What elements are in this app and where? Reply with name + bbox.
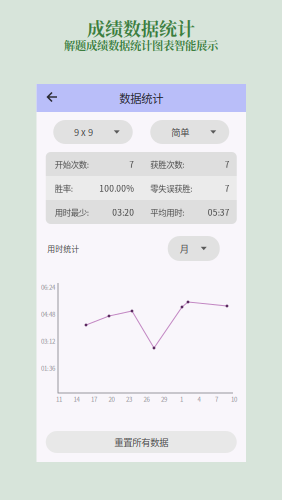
staticText: 简单 [171, 125, 189, 139]
staticText: 用时统计 [47, 243, 79, 254]
staticText: 26 [143, 395, 149, 403]
button[interactable]: 月 [168, 236, 220, 261]
staticText: 14 [73, 395, 79, 403]
staticText: 重置所有数据 [114, 435, 168, 449]
staticText: 7 [215, 395, 218, 403]
staticText: 解题成绩数据统计图表智能展示 [64, 37, 218, 53]
staticText: 23 [126, 395, 132, 403]
staticText: 04:48 [41, 310, 55, 318]
staticText: 零失误获胜: [150, 182, 192, 194]
button[interactable]: 9 x 9 [53, 120, 133, 144]
button[interactable]: Back [36, 86, 65, 110]
staticText: 03:12 [41, 337, 55, 345]
staticText: 平均用时: [150, 206, 184, 218]
staticText: 10 [231, 395, 237, 403]
staticText: 100.00% [99, 182, 134, 194]
staticText: 胜率: [55, 182, 73, 194]
staticText: 20 [108, 395, 114, 403]
staticText: 7 [225, 158, 230, 170]
staticText: 17 [91, 395, 97, 403]
staticText: 开始次数: [55, 158, 89, 170]
staticText: 05:37 [208, 206, 230, 218]
button[interactable]: 重置所有数据 [46, 431, 237, 453]
staticText: 03:20 [112, 206, 134, 218]
staticText: 01:36 [41, 364, 55, 372]
staticText: 月 [180, 242, 189, 255]
staticText: 29 [161, 395, 167, 403]
staticText: 成绩数据统计 [87, 15, 195, 41]
staticText: 7 [129, 158, 134, 170]
button[interactable]: 简单 [150, 120, 229, 144]
staticText: 9 x 9 [74, 125, 93, 139]
staticText: 4 [197, 395, 200, 403]
staticText: 11 [56, 395, 62, 403]
staticText: 06:24 [41, 283, 55, 291]
staticText: 数据统计 [119, 90, 163, 106]
staticText: 1 [180, 395, 183, 403]
staticText: 用时最少: [55, 206, 89, 218]
staticText: 7 [225, 182, 230, 194]
staticText: 获胜次数: [150, 158, 184, 170]
